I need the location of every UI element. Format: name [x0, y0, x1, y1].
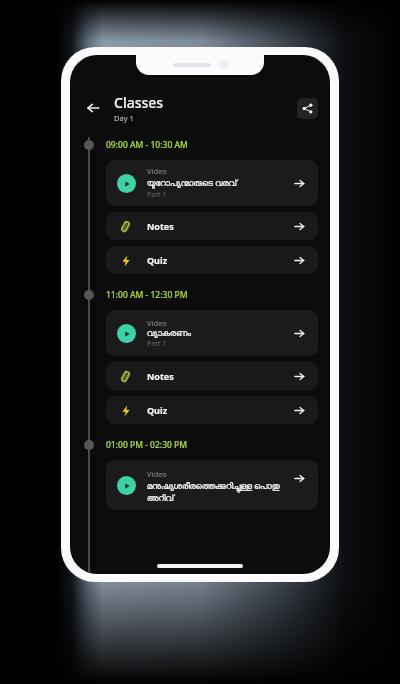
- staticText: 11:00 AM - 12:30 PM: [106, 289, 188, 301]
- button[interactable]: Video: [106, 460, 318, 510]
- button[interactable]: Video: [106, 160, 318, 206]
- button[interactable]: Quiz: [106, 396, 318, 424]
- staticText: Video: [147, 166, 167, 176]
- staticText: Notes: [147, 370, 291, 382]
- button[interactable]: Notes: [106, 362, 318, 390]
- button[interactable]: Quiz: [106, 246, 318, 274]
- staticText: Day 1: [114, 113, 134, 123]
- button[interactable]: Share: [297, 98, 318, 119]
- staticText: Part 1: [147, 190, 167, 200]
- staticText: Classes: [114, 93, 164, 112]
- staticText: Video: [147, 318, 167, 328]
- staticText: യൂറോപ്യന്മാരുടെ വരവ്: [147, 177, 238, 189]
- staticText: Part 1: [147, 339, 167, 349]
- staticText: Notes: [147, 220, 291, 232]
- button[interactable]: Back: [80, 95, 106, 121]
- staticText: Video: [147, 469, 167, 479]
- button[interactable]: Notes: [106, 212, 318, 240]
- staticText: 09:00 AM - 10:30 AM: [106, 139, 188, 151]
- staticText: മനുഷ്യശരീരത്തെക്കുറിച്ചുള്ള പൊതു അറിവ്: [147, 480, 285, 502]
- staticText: Quiz: [147, 254, 291, 266]
- staticText: Quiz: [147, 404, 291, 416]
- staticText: വ്യാകരണം: [147, 329, 191, 338]
- staticText: 01:00 PM - 02:30 PM: [106, 439, 188, 451]
- button[interactable]: Video: [106, 310, 318, 356]
